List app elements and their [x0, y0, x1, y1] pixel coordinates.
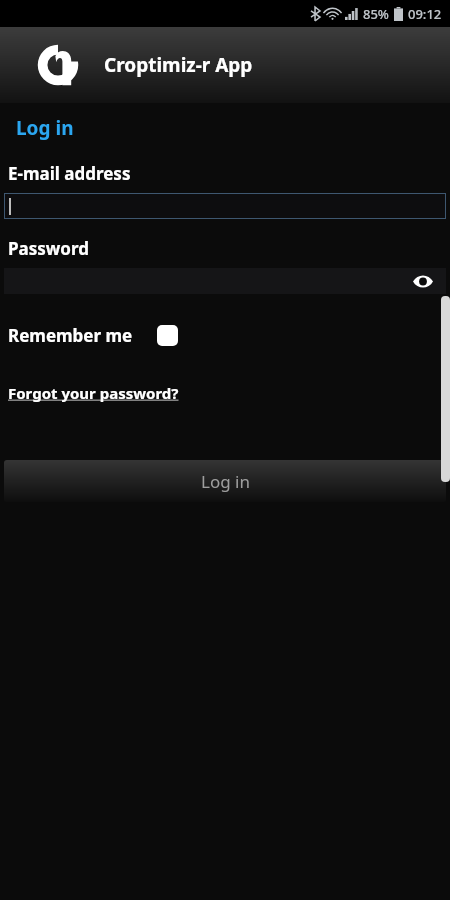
button[interactable]: Show password: [4, 268, 446, 294]
button[interactable]: Log in: [16, 115, 74, 141]
staticText: Forgot your password?: [8, 383, 179, 403]
button[interactable]: Forgot your password?: [8, 383, 179, 403]
staticText: 85%: [363, 5, 389, 23]
staticText: 09:12: [408, 5, 442, 23]
staticText: Croptimiz-r App: [104, 52, 253, 78]
staticText: Log in: [201, 470, 250, 493]
button[interactable]: Remember me: [8, 324, 178, 347]
button[interactable]: Show password: [412, 270, 434, 292]
staticText: Remember me: [8, 324, 133, 347]
staticText: E-mail address: [8, 162, 131, 185]
staticText: Log in: [16, 115, 74, 141]
button[interactable]: Log in: [4, 460, 446, 502]
staticText: Password: [8, 237, 89, 260]
button[interactable]: [4, 193, 446, 219]
